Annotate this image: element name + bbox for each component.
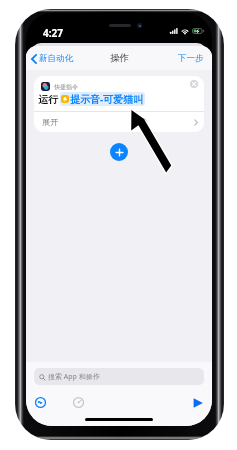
staticText: 运行 [38,93,58,106]
staticText: 搜索 App 和操作 [48,372,100,382]
staticText: 操作 [110,52,129,64]
button[interactable]: Shortcut actions [35,397,46,408]
staticText: 快捷指令 [54,83,78,91]
button[interactable]: 搜索 App 和操作 [34,368,204,385]
button[interactable]: Add action [110,143,128,161]
button[interactable]: 快捷指令 [34,76,204,132]
button[interactable]: Variables [73,397,84,408]
staticText: 提示音-可爱猫叫 [70,92,144,106]
button[interactable]: 提示音-可爱猫叫 [61,92,144,106]
button[interactable]: Run shortcut [191,396,204,409]
button[interactable]: 新自动化 [31,53,73,64]
staticText: 展开 [42,117,59,127]
button[interactable]: 下一步 [178,53,204,64]
staticText: 4:27 [43,26,63,40]
button[interactable]: Remove action [190,80,198,88]
staticText: 新自动化 [39,53,73,64]
button[interactable]: 展开 [34,112,204,132]
